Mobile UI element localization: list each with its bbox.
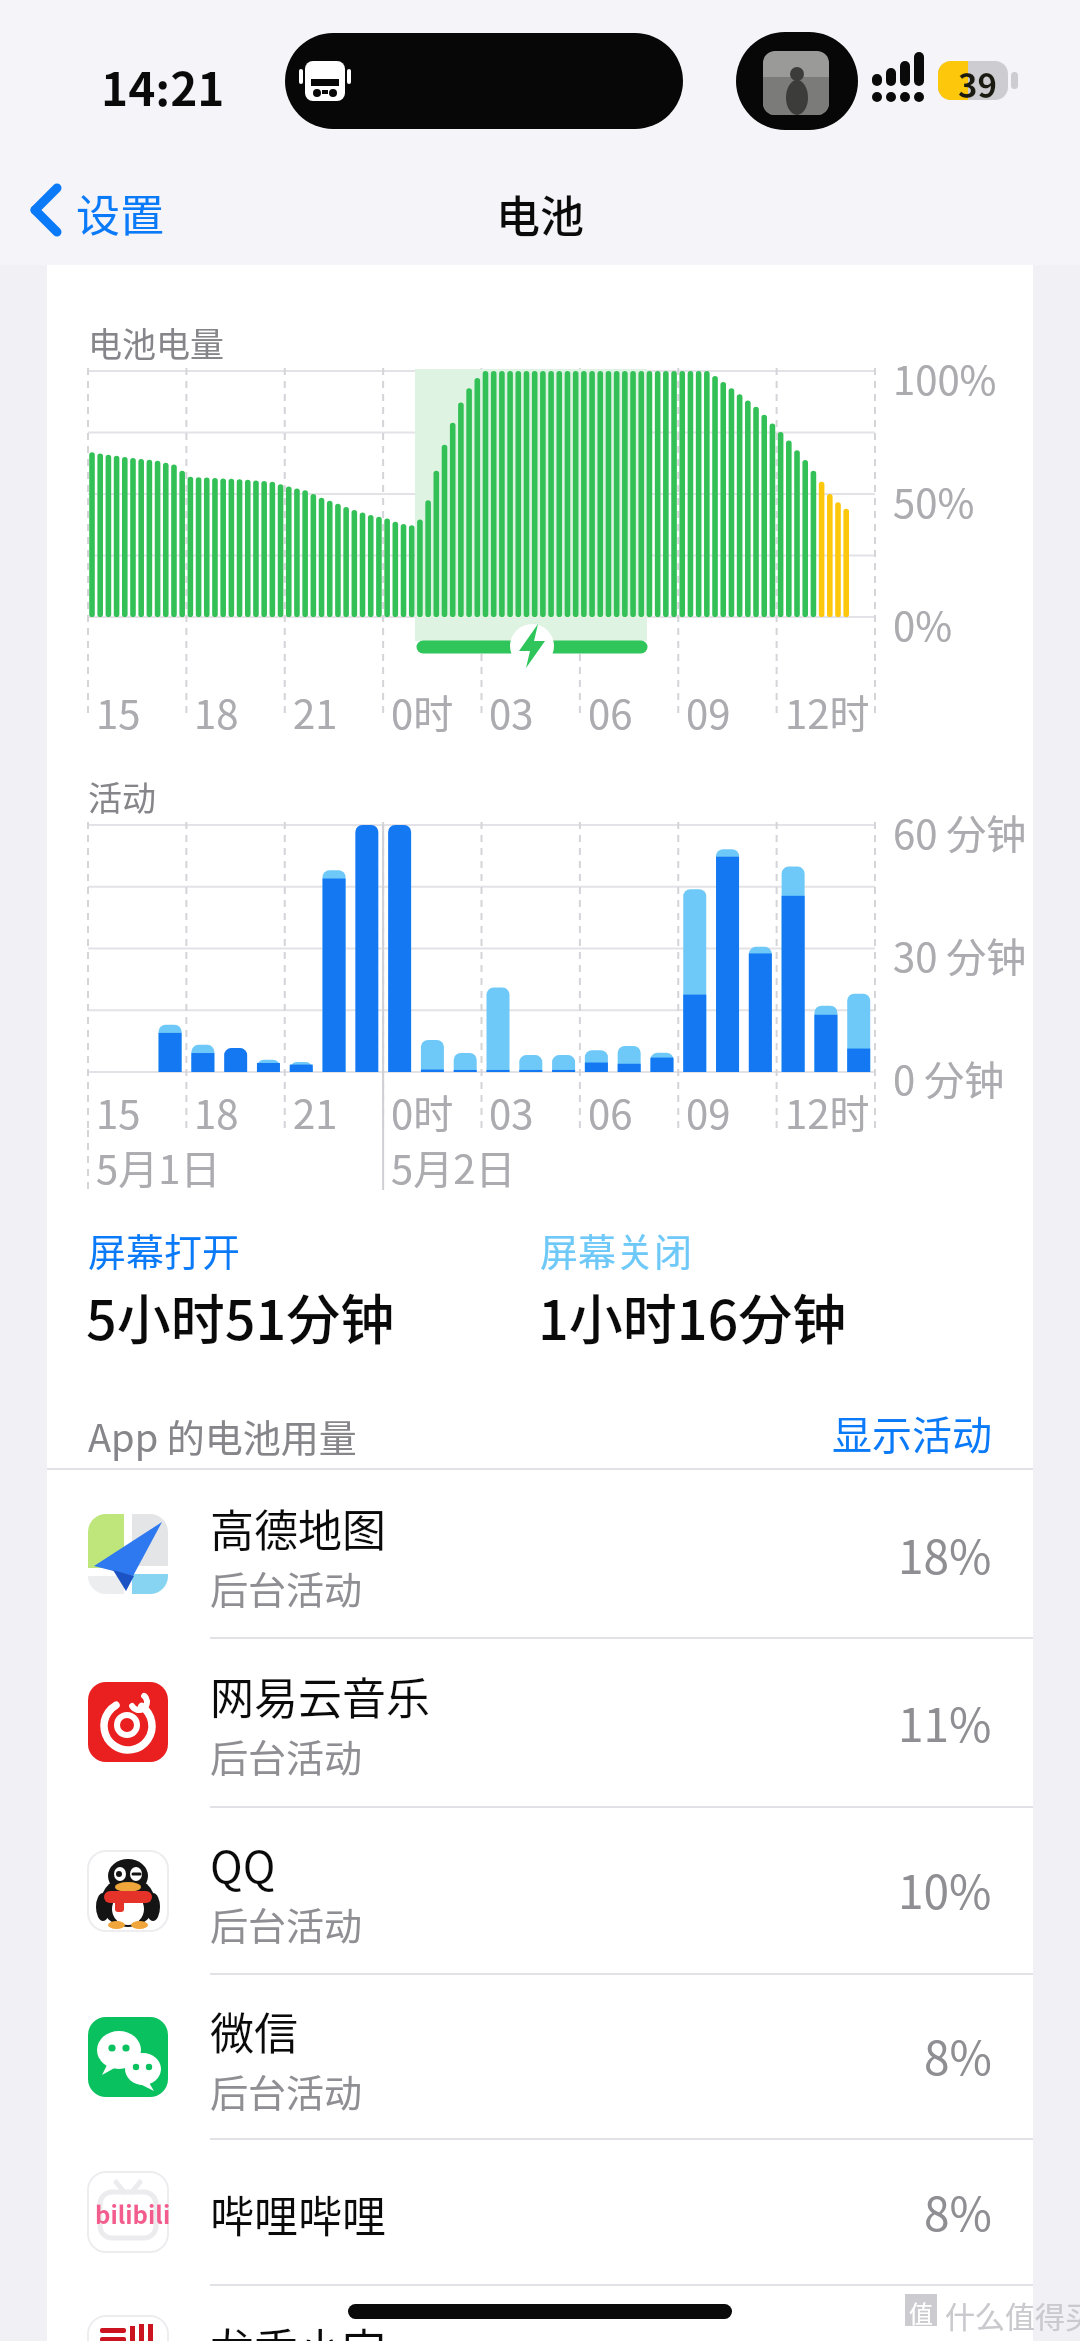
staticText: 0 分钟 — [893, 1049, 1005, 1107]
staticText: 18% — [898, 1521, 992, 1588]
staticText: 5月1日 — [96, 1138, 221, 1196]
staticText: 06 — [588, 1083, 633, 1141]
staticText: 后台活动 — [210, 1728, 363, 1783]
staticText: App 的电池用量 — [88, 1408, 357, 1463]
staticText: 03 — [489, 683, 534, 741]
staticText: 电池电量 — [88, 318, 224, 367]
staticText: 06 — [588, 683, 633, 741]
staticText: 8% — [924, 2178, 992, 2245]
staticText: 后台活动 — [210, 1896, 363, 1951]
staticText: 1小时16分钟 — [538, 1277, 847, 1355]
staticText: 14:21 — [101, 53, 225, 120]
staticText: 值 — [909, 2295, 933, 2327]
staticText: 18 — [194, 683, 239, 741]
staticText: 10% — [898, 1856, 992, 1923]
staticText: 50% — [893, 472, 975, 530]
button[interactable]: 设置 — [20, 175, 190, 245]
button[interactable]: 网易云音乐 — [47, 1638, 1033, 1806]
staticText: 活动 — [88, 772, 156, 821]
staticText: QQ — [210, 1832, 276, 1896]
staticText: 15 — [96, 1083, 141, 1141]
staticText: 设置 — [76, 181, 164, 245]
staticText: 后台活动 — [210, 1560, 363, 1615]
staticText: 18 — [194, 1083, 239, 1141]
staticText: 什么值得买 — [945, 2293, 1080, 2336]
staticText: 哔哩哔哩 — [210, 2182, 386, 2246]
staticText: 30 分钟 — [893, 926, 1027, 984]
staticText: 100% — [893, 349, 997, 407]
staticText: 微信 — [210, 1999, 298, 2063]
staticText: 60 分钟 — [893, 803, 1027, 861]
staticText: 39 — [958, 60, 997, 108]
staticText: 网易云音乐 — [210, 1664, 430, 1728]
staticText: 0时 — [391, 683, 454, 741]
staticText: 5小时51分钟 — [86, 1277, 395, 1355]
staticText: 15 — [96, 683, 141, 741]
staticText: 0时 — [391, 1083, 454, 1141]
staticText: 03 — [489, 1083, 534, 1141]
staticText: 显示活动 — [832, 1404, 992, 1460]
staticText: 21 — [293, 1083, 338, 1141]
staticText: 后台活动 — [210, 2063, 363, 2118]
staticText: 龙香小宝 — [210, 2315, 386, 2341]
button[interactable]: QQ — [47, 1806, 1033, 1973]
button[interactable]: 显示活动 — [772, 1404, 992, 1460]
staticText: 高德地图 — [210, 1496, 386, 1560]
button[interactable]: 哔哩哔哩 — [47, 2138, 1033, 2284]
staticText: 09 — [686, 1083, 731, 1141]
staticText: 8% — [924, 2022, 992, 2089]
staticText: 11% — [898, 1689, 992, 1756]
staticText: 21 — [293, 683, 338, 741]
staticText: 5月2日 — [391, 1138, 516, 1196]
staticText: 12时 — [785, 1083, 870, 1141]
staticText: 09 — [686, 683, 731, 741]
button[interactable]: 高德地图 — [47, 1470, 1033, 1638]
staticText: bilibili — [95, 2196, 171, 2231]
staticText: 12时 — [785, 683, 870, 741]
staticText: 0% — [893, 595, 953, 653]
staticText: 屏幕关闭 — [540, 1222, 693, 1277]
staticText: 电池 — [496, 182, 584, 246]
staticText: 屏幕打开 — [88, 1222, 241, 1277]
button[interactable]: 微信 — [47, 1973, 1033, 2138]
